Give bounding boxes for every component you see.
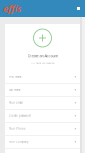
button[interactable]: Menu <box>74 4 83 13</box>
staticText: Create password <box>9 114 31 118</box>
staticText: Your email <box>9 101 23 105</box>
button[interactable]: Your Phone <box>5 122 80 135</box>
staticText: All fields are required <box>31 61 54 65</box>
button[interactable]: Last Name <box>5 83 80 96</box>
staticText: effis <box>3 2 21 15</box>
button[interactable]: First Name <box>5 70 80 83</box>
staticText: Last Name <box>9 88 21 92</box>
button[interactable]: Create password <box>5 109 80 122</box>
staticText: Create an Account <box>27 53 57 58</box>
button[interactable]: Your Country <box>5 148 80 153</box>
staticText: First Name <box>9 75 22 79</box>
button[interactable]: Your Company <box>5 135 80 148</box>
staticText: Your Phone <box>9 127 26 131</box>
button[interactable]: Your email <box>5 96 80 109</box>
staticText: Your Company <box>9 140 28 144</box>
